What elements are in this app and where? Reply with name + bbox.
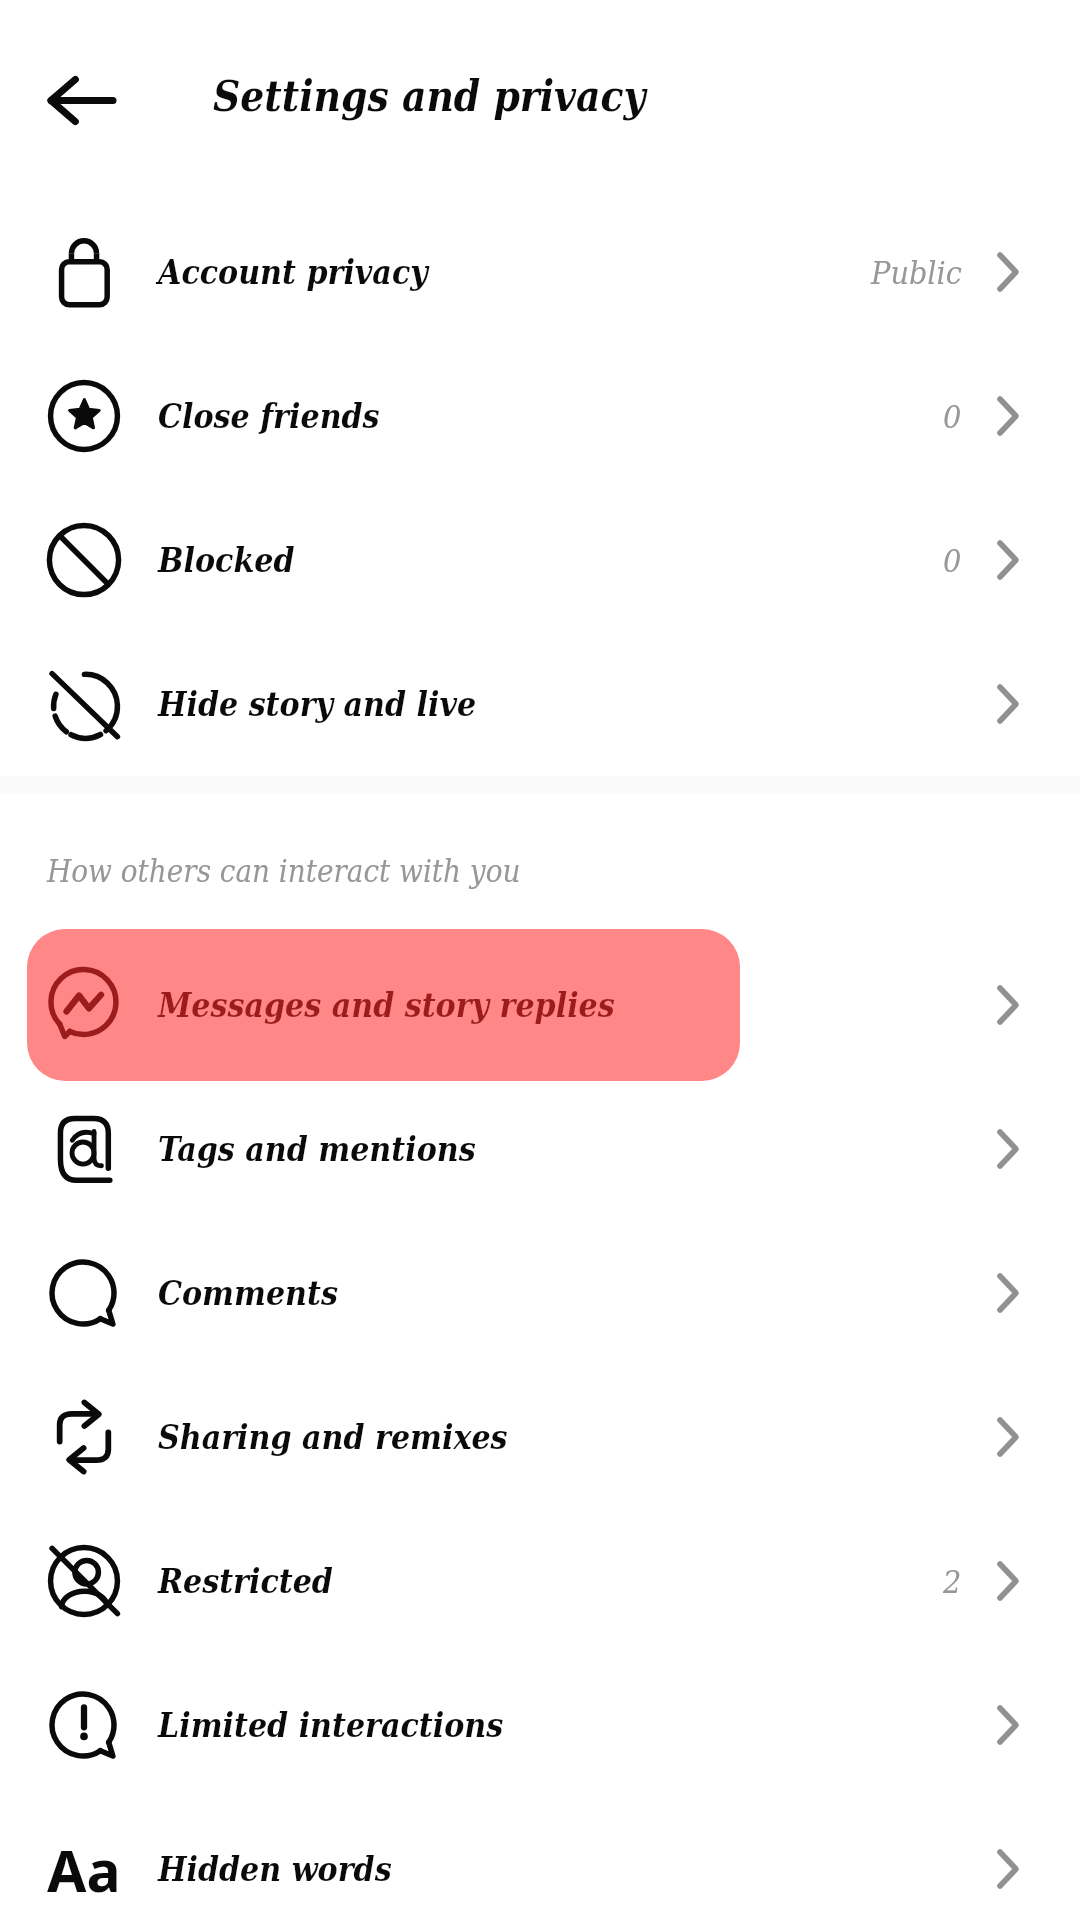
staticText: Close friends xyxy=(158,397,380,436)
button[interactable]: Messages and story replies xyxy=(0,933,1080,1077)
staticText: 0 xyxy=(943,542,962,579)
button[interactable]: Comments xyxy=(0,1221,1080,1365)
staticText: Sharing and remixes xyxy=(158,1418,508,1457)
button[interactable]: Close friends xyxy=(0,344,1080,488)
button[interactable]: Tags and mentions xyxy=(0,1077,1080,1221)
button[interactable]: Aa xyxy=(0,1797,1080,1920)
button[interactable]: Blocked xyxy=(0,488,1080,632)
staticText: Comments xyxy=(158,1274,338,1313)
staticText: Public xyxy=(871,254,962,291)
staticText: Blocked xyxy=(158,541,295,580)
staticText: Aa xyxy=(47,1831,121,1907)
button[interactable]: Limited interactions xyxy=(0,1653,1080,1797)
staticText: Messages and story replies xyxy=(158,986,615,1025)
staticText: Limited interactions xyxy=(158,1706,504,1745)
button[interactable]: Account privacy xyxy=(0,200,1080,344)
staticText: Settings and privacy xyxy=(213,72,646,121)
staticText: 0 xyxy=(943,398,962,435)
button[interactable]: Sharing and remixes xyxy=(0,1365,1080,1509)
staticText: Account privacy xyxy=(158,253,428,292)
button[interactable]: Hide story and live xyxy=(0,632,1080,776)
button[interactable]: Restricted xyxy=(0,1509,1080,1653)
staticText: 2 xyxy=(943,1563,962,1600)
staticText: Restricted xyxy=(158,1562,333,1601)
button[interactable]: Back xyxy=(34,62,130,138)
staticText: Hide story and live xyxy=(158,685,477,724)
staticText: How others can interact with you xyxy=(47,853,521,889)
staticText: Hidden words xyxy=(158,1850,392,1889)
staticText: Tags and mentions xyxy=(158,1130,476,1169)
